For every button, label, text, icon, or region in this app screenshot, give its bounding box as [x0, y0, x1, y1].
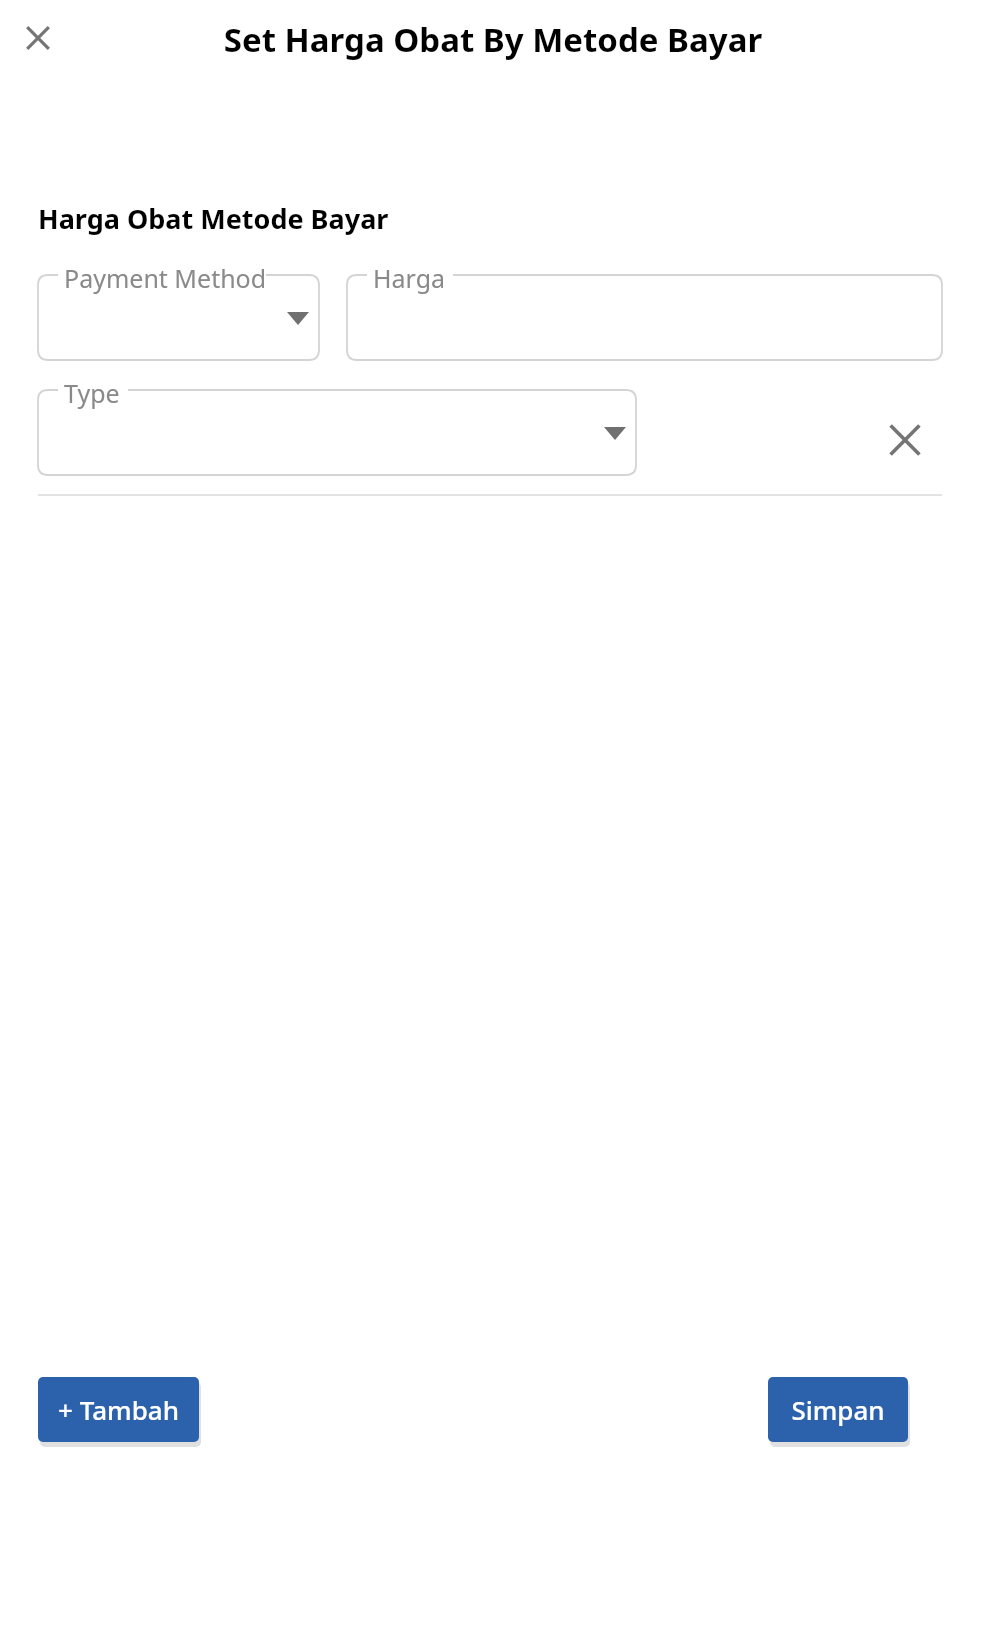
staticText: + Tambah [58, 1392, 179, 1427]
staticText: Payment Method [64, 261, 267, 295]
button[interactable]: + Tambah [38, 1377, 199, 1442]
staticText: Set Harga Obat By Metode Bayar [0, 17, 986, 62]
button[interactable]: Simpan [768, 1377, 908, 1442]
button[interactable]: Remove row [877, 412, 933, 468]
button[interactable]: Harga [347, 262, 942, 360]
button[interactable]: Close [14, 14, 62, 62]
staticText: Type [64, 376, 120, 410]
staticText: Harga Obat Metode Bayar [38, 200, 389, 237]
staticText: Harga [373, 261, 446, 295]
button[interactable]: Type [38, 377, 636, 475]
staticText: Simpan [791, 1392, 885, 1427]
button[interactable]: Payment Method [38, 262, 319, 360]
